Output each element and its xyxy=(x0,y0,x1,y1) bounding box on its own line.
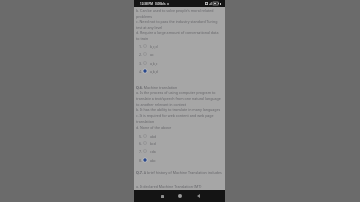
button[interactable]: 7. xyxy=(136,148,222,154)
staticText: 4. xyxy=(139,69,143,74)
staticText: a. Is the process of using computer prog… xyxy=(136,90,222,107)
staticText: c. Need not to pass the industry standar… xyxy=(136,19,222,30)
staticText: 2. xyxy=(139,52,143,57)
staticText: 7. xyxy=(139,149,143,154)
button[interactable]: 6. xyxy=(136,140,222,146)
staticText: d. Require a large amount of conversatio… xyxy=(136,30,222,41)
staticText: d. None of the above xyxy=(136,125,222,130)
staticText: 0.0Kb/s xyxy=(155,2,166,6)
staticText: 5. xyxy=(139,134,143,139)
staticText: 6. xyxy=(139,141,143,146)
staticText: 12:38 PM xyxy=(140,2,153,6)
staticText: c. It is required for web content and we… xyxy=(136,113,222,124)
staticText: Q.6. Machine translation xyxy=(136,85,222,90)
staticText: a,b,d xyxy=(150,69,158,74)
button[interactable]: Back xyxy=(189,190,207,202)
button[interactable]: 1. xyxy=(136,43,222,49)
staticText: b. It has the ability to translate in ma… xyxy=(136,107,222,112)
staticText: 3. xyxy=(139,61,143,66)
staticText: a. It declared Machine Translation (MT) xyxy=(136,184,222,189)
button[interactable]: 3. xyxy=(136,60,222,66)
button[interactable]: 5. xyxy=(136,133,222,139)
staticText: abd xyxy=(150,134,157,139)
staticText: abc xyxy=(150,158,156,163)
staticText: cda xyxy=(150,149,156,154)
button[interactable]: 4. xyxy=(136,68,222,74)
button[interactable]: Home xyxy=(171,190,189,202)
staticText: Q.7. A brief history of Machine Translat… xyxy=(136,170,222,175)
staticText: bcd xyxy=(150,141,156,146)
staticText: b,c,d xyxy=(150,44,158,49)
button[interactable]: 8. xyxy=(136,157,222,163)
staticText: a,b,c xyxy=(150,61,158,66)
staticText: 8. xyxy=(139,158,143,163)
staticText: ac xyxy=(150,52,154,57)
staticText: 1. xyxy=(139,44,143,49)
button[interactable]: 2. xyxy=(136,51,222,57)
staticText: b. Can be used to solve people's moral r… xyxy=(136,8,222,19)
button[interactable]: Recent apps xyxy=(153,190,171,202)
